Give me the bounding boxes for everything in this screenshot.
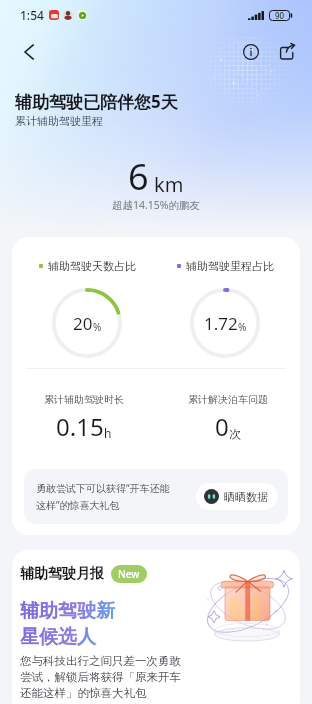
staticText: 累计解决泊车问题 <box>188 393 268 406</box>
staticText: 6 <box>128 152 149 201</box>
staticText: 90 <box>275 10 285 21</box>
staticText: 勇敢尝试下可以获得“开车还能 这样”的惊喜大礼包 <box>36 481 190 512</box>
staticText: 晒晒数据 <box>224 490 268 504</box>
staticText: 次 <box>229 426 241 441</box>
staticText: 超越14.15%的鹏友 <box>112 198 201 212</box>
staticText: New <box>118 567 140 581</box>
button[interactable]: Share <box>272 37 302 67</box>
staticText: 1.72 <box>204 312 238 335</box>
staticText: % <box>93 320 102 334</box>
staticText: h <box>104 425 112 441</box>
staticText: 辅助驾驶里程占比 <box>186 259 274 273</box>
staticText: 辅助驾驶新 星候选人 <box>20 599 115 648</box>
staticText: % <box>238 320 247 334</box>
staticText: 20 <box>73 312 93 335</box>
button[interactable]: 辅助驾驶月报 <box>12 550 300 704</box>
staticText: 辅助驾驶天数占比 <box>48 259 136 273</box>
button[interactable]: 晒晒数据 <box>196 483 278 510</box>
staticText: 累计辅助驾驶时长 <box>44 393 124 406</box>
button[interactable]: Back <box>14 37 44 67</box>
staticText: 您与科技出行之间只差一次勇敢 尝试，解锁后将获得「原来开车 还能这样」的惊喜大礼… <box>20 654 181 701</box>
staticText: 0.15 <box>56 410 104 443</box>
staticText: km <box>154 171 184 198</box>
staticText: 辅助驾驶已陪伴您5天 <box>15 90 178 113</box>
staticText: 累计辅助驾驶里程 <box>15 114 103 128</box>
button[interactable]: Info <box>236 37 266 67</box>
staticText: 辅助驾驶月报 <box>20 565 104 583</box>
staticText: 0 <box>215 410 229 443</box>
button[interactable]: 勇敢尝试下可以获得“开车还能 这样”的惊喜大礼包 <box>24 469 288 524</box>
staticText: 1:54 <box>20 7 44 23</box>
